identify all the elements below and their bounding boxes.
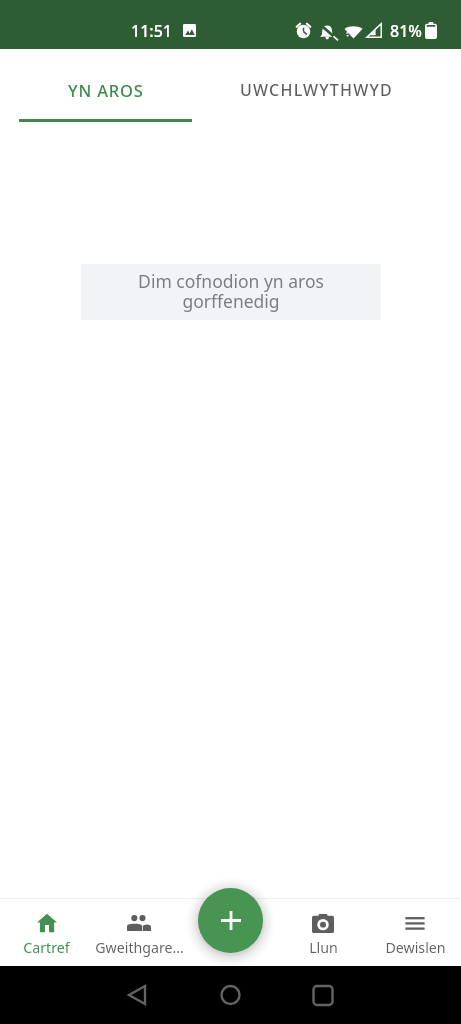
- staticText: Dewislen: [385, 938, 446, 957]
- staticText: UWCHLWYTHWYD: [240, 79, 393, 101]
- button[interactable]: UWCHLWYTHWYD: [230, 54, 403, 125]
- staticText: Cartref: [23, 938, 70, 957]
- staticText: Gweithgare…: [95, 938, 184, 957]
- staticText: YN AROS: [68, 79, 144, 101]
- staticText: Dim cofnodion yn aros gorffenedig: [131, 269, 331, 314]
- button[interactable]: Add record: [198, 888, 263, 953]
- button[interactable]: Cartref: [0, 898, 93, 966]
- button[interactable]: Llun: [277, 898, 369, 966]
- staticText: Llun: [309, 938, 338, 957]
- staticText: 11:51: [131, 20, 172, 42]
- button[interactable]: Dewislen: [369, 898, 461, 966]
- button[interactable]: YN AROS: [19, 54, 192, 125]
- staticText: 81%: [390, 20, 422, 42]
- button[interactable]: Gweithgare…: [93, 898, 185, 966]
